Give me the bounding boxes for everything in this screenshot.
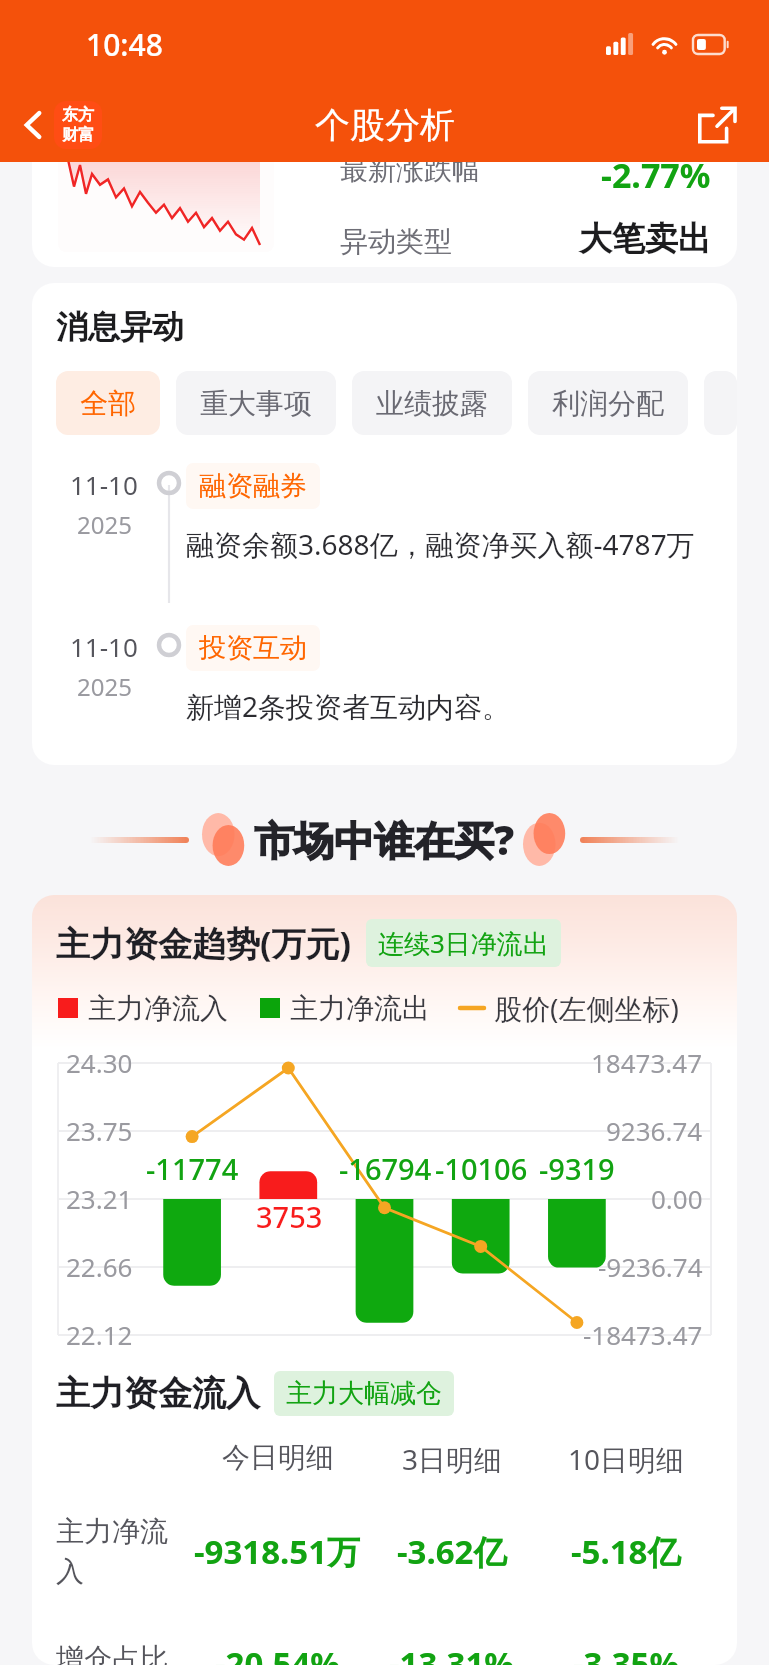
button[interactable]: 业绩披露 — [352, 371, 512, 435]
staticText: -3.62亿 — [397, 1529, 507, 1574]
staticText: 市场中谁在买? — [254, 812, 515, 867]
staticText: 连续3日净流出 — [378, 925, 549, 961]
staticText: 24.30 — [66, 1045, 133, 1080]
staticText: 消息异动 — [56, 307, 184, 347]
staticText: 主力净流入 — [88, 991, 228, 1026]
staticText: 重大事项 — [200, 386, 312, 421]
staticText: -16794 — [339, 1149, 432, 1188]
staticText: -20.54% — [215, 1641, 341, 1665]
staticText: -9319 — [539, 1149, 615, 1188]
staticText: 全部 — [80, 386, 136, 421]
staticText: 主力大幅减仓 — [286, 1377, 442, 1410]
staticText: -13.31% — [389, 1641, 515, 1665]
staticText: 投资互动 — [199, 631, 307, 665]
staticText: 主力资金趋势(万元) — [56, 920, 352, 966]
button[interactable]: Share — [689, 97, 745, 153]
staticText: -9236.74 — [598, 1249, 703, 1284]
staticText: -10106 — [435, 1149, 528, 1188]
staticText: 10日明细 — [568, 1440, 685, 1478]
staticText: 11-10 — [70, 629, 138, 664]
staticText: -5.18亿 — [571, 1529, 681, 1574]
staticText: 股价(左侧坐标) — [494, 989, 679, 1027]
staticText: -9318.51万 — [194, 1529, 361, 1574]
staticText: 新增2条投资者互动内容。 — [186, 687, 511, 725]
staticText: 财富 — [62, 125, 94, 145]
staticText: 18473.47 — [591, 1045, 703, 1080]
staticText: 大笔卖出 — [579, 218, 711, 260]
staticText: 最新涨跌幅 — [340, 152, 480, 187]
staticText: 增仓占比 — [56, 1641, 168, 1665]
staticText: 23.75 — [66, 1113, 133, 1148]
staticText: 融资融券 — [199, 469, 307, 503]
staticText: 业绩披露 — [376, 386, 488, 421]
staticText: 11-11 — [543, 1343, 611, 1345]
staticText: -11774 — [146, 1149, 239, 1188]
staticText: 融资余额3.688亿，融资净买入额-4787万 — [186, 525, 695, 563]
staticText: 利润分配 — [552, 386, 664, 421]
button[interactable]: 最新涨跌幅 — [32, 152, 737, 267]
button[interactable]: 利润分配 — [528, 371, 688, 435]
staticText: 10:48 — [86, 24, 163, 65]
staticText: -2.77% — [601, 152, 711, 198]
staticText: 22.66 — [66, 1249, 133, 1284]
staticText: 3日明细 — [402, 1440, 503, 1478]
staticText: 11-10 — [70, 467, 138, 502]
staticText: 22.12 — [66, 1317, 133, 1345]
staticText: 异动类型 — [340, 224, 452, 259]
staticText: 主力资金流入 — [56, 1372, 260, 1415]
staticText: 2025 — [77, 508, 132, 541]
staticText: 0.00 — [651, 1181, 703, 1216]
staticText: -3.35% — [573, 1641, 680, 1665]
staticText: 个股分析 — [315, 103, 455, 147]
staticText: 23.21 — [66, 1181, 133, 1216]
staticText: 东方 — [62, 105, 94, 125]
staticText: 2025 — [77, 670, 132, 703]
staticText: 主力净流出 — [290, 991, 430, 1026]
staticText: 主力净流入 — [56, 1514, 190, 1589]
button[interactable]: 重大事项 — [176, 371, 336, 435]
staticText: 今日明细 — [222, 1440, 334, 1475]
staticText: 3753 — [256, 1197, 323, 1236]
button[interactable]: Back — [14, 97, 108, 153]
staticText: 9236.74 — [606, 1113, 703, 1148]
staticText: -18473.47 — [583, 1317, 703, 1345]
button[interactable]: 全部 — [56, 371, 160, 435]
